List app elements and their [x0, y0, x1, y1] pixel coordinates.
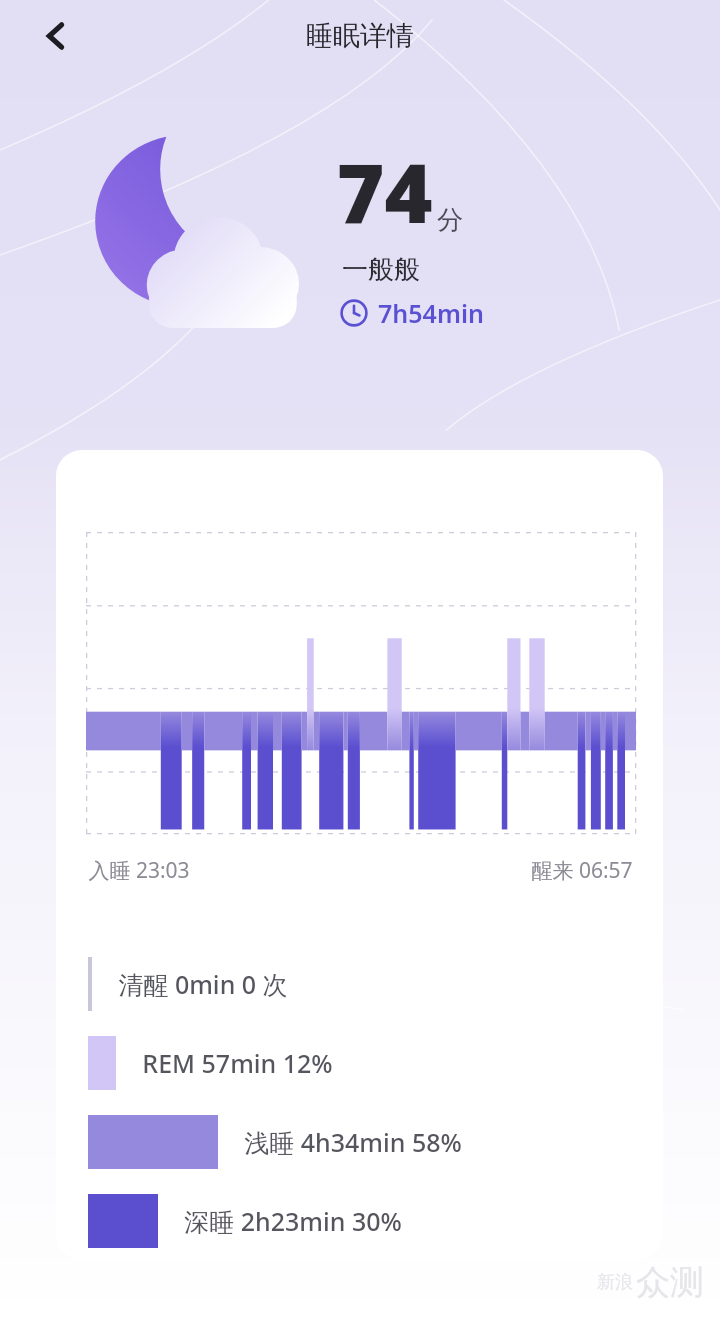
- staticText: 深睡 2h23min 30%: [184, 1204, 402, 1238]
- staticText: 分: [437, 204, 463, 237]
- staticText: 74: [336, 135, 433, 247]
- staticText: 众测: [636, 1261, 704, 1304]
- button[interactable]: 浅睡 4h34min 58%: [56, 1109, 663, 1175]
- staticText: 清醒 0min 0 次: [118, 967, 288, 1001]
- staticText: 醒来 06:57: [531, 856, 633, 885]
- button[interactable]: 入睡 23:03: [56, 450, 663, 1260]
- staticText: 一般般: [342, 253, 420, 286]
- button[interactable]: 深睡 2h23min 30%: [56, 1188, 663, 1254]
- staticText: 浅睡 4h34min 58%: [244, 1125, 462, 1159]
- button[interactable]: REM 57min 12%: [56, 1030, 663, 1096]
- staticText: 睡眠详情: [306, 19, 414, 53]
- staticText: 7h54min: [378, 296, 484, 330]
- staticText: 新浪: [597, 1271, 633, 1294]
- button[interactable]: 清醒 0min 0 次: [56, 951, 663, 1017]
- staticText: 入睡 23:03: [88, 856, 190, 885]
- staticText: REM 57min 12%: [142, 1046, 333, 1080]
- button[interactable]: Back: [28, 8, 84, 64]
